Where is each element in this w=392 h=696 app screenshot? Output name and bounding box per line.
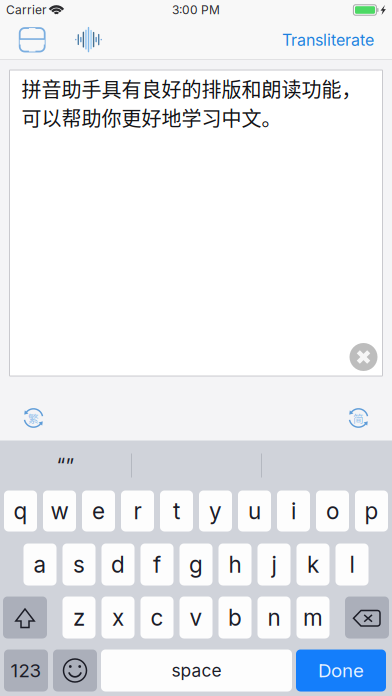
staticText: s — [73, 551, 85, 578]
button[interactable]: Read aloud — [66, 20, 110, 59]
button[interactable]: Shift — [3, 596, 47, 638]
staticText: space — [171, 660, 221, 681]
button[interactable]: Clear text — [349, 343, 377, 371]
button[interactable]: p — [355, 490, 388, 531]
staticText: Carrier — [6, 3, 47, 17]
button[interactable]: x — [101, 596, 134, 638]
button[interactable]: Scan text — [10, 20, 54, 59]
button[interactable]: Convert to simplified Chinese — [336, 402, 380, 434]
button[interactable]: f — [140, 543, 173, 585]
button[interactable]: j — [257, 543, 290, 585]
staticText: v — [189, 604, 202, 631]
staticText: p — [364, 497, 378, 525]
button[interactable]: c — [140, 596, 173, 638]
staticText: k — [307, 551, 319, 578]
button[interactable]: z — [62, 596, 95, 638]
staticText: l — [349, 551, 354, 578]
button[interactable]: v — [179, 596, 212, 638]
button[interactable]: Transliterate — [268, 18, 386, 62]
button[interactable]: u — [238, 490, 271, 531]
staticText: 123 — [10, 659, 41, 682]
staticText: t — [173, 497, 180, 525]
staticText: a — [33, 551, 46, 578]
staticText: x — [112, 604, 124, 631]
staticText: r — [133, 497, 141, 525]
button[interactable]: Emoji — [53, 649, 97, 691]
staticText: q — [13, 497, 27, 525]
button[interactable]: Delete — [345, 596, 389, 638]
staticText: Done — [318, 659, 364, 682]
staticText: 简 — [353, 410, 364, 426]
button[interactable]: h — [218, 543, 251, 585]
staticText: j — [271, 551, 276, 578]
button[interactable]: 123 — [4, 649, 48, 691]
staticText: Transliterate — [282, 30, 374, 50]
staticText: f — [153, 551, 161, 578]
staticText: “” — [56, 453, 74, 478]
button[interactable]: y — [199, 490, 232, 531]
button[interactable]: q — [4, 490, 37, 531]
staticText: i — [291, 497, 296, 525]
button[interactable]: s — [62, 543, 95, 585]
button[interactable]: w — [43, 490, 76, 531]
staticText: g — [189, 551, 203, 578]
button[interactable]: l — [335, 543, 368, 585]
staticText: 繁 — [28, 410, 39, 426]
button[interactable]: r — [121, 490, 154, 531]
staticText: 3:00 PM — [172, 3, 220, 17]
button[interactable]: g — [179, 543, 212, 585]
staticText: w — [50, 497, 68, 525]
staticText: u — [248, 497, 261, 525]
button[interactable]: “” — [0, 444, 131, 486]
staticText: e — [92, 497, 105, 525]
button[interactable]: o — [316, 490, 349, 531]
button[interactable]: n — [257, 596, 290, 638]
staticText: m — [303, 604, 323, 631]
staticText: y — [209, 497, 222, 525]
button[interactable]: t — [160, 490, 193, 531]
button[interactable]: space — [101, 649, 292, 691]
staticText: b — [228, 604, 242, 631]
button[interactable]: Done — [296, 649, 386, 691]
staticText: n — [267, 604, 280, 631]
button[interactable]: b — [218, 596, 251, 638]
staticText: o — [326, 497, 339, 525]
button[interactable]: Convert to traditional Chinese — [11, 402, 55, 434]
button[interactable]: i — [277, 490, 310, 531]
staticText: c — [150, 604, 163, 631]
button[interactable]: e — [82, 490, 115, 531]
button[interactable]: d — [101, 543, 134, 585]
staticText: h — [228, 551, 241, 578]
staticText: z — [73, 604, 85, 631]
button[interactable]: k — [296, 543, 329, 585]
button[interactable]: a — [23, 543, 56, 585]
staticText: d — [111, 551, 125, 578]
staticText: 拼音助手具有良好的排版和朗读功能，可以帮助你更好地学习中文。 — [21, 74, 361, 132]
button[interactable]: m — [296, 596, 329, 638]
